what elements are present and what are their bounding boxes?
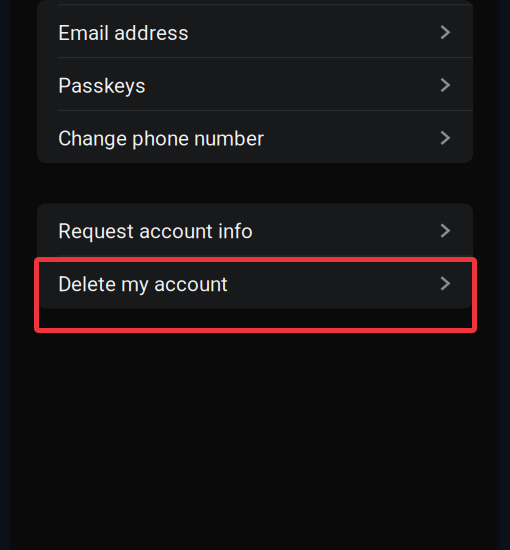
button[interactable]: Passkeys: [37, 58, 473, 110]
staticText: Change phone number: [58, 126, 264, 151]
button[interactable]: Request account info: [37, 204, 473, 255]
staticText: Delete my account: [58, 272, 228, 296]
staticText: Passkeys: [58, 74, 146, 98]
button[interactable]: Delete my account: [37, 256, 473, 308]
staticText: Email address: [58, 21, 189, 45]
button[interactable]: Email address: [37, 5, 473, 57]
button[interactable]: Change phone number: [37, 111, 473, 163]
staticText: Request account info: [58, 219, 253, 243]
